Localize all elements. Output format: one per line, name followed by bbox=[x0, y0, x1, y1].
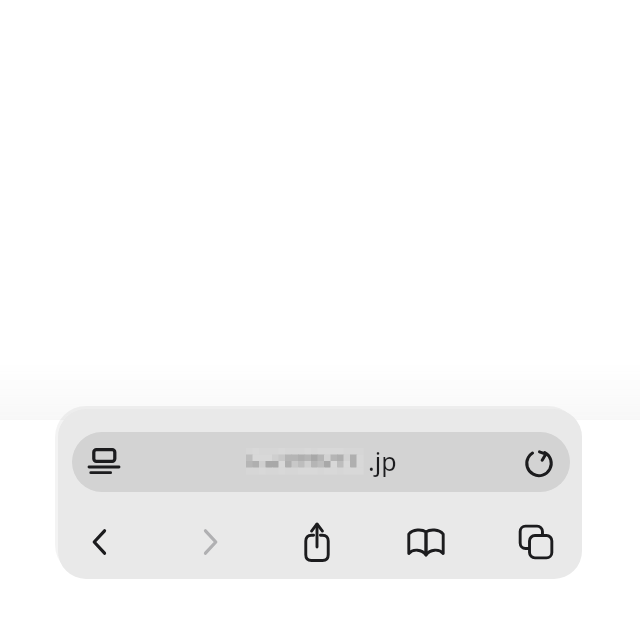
button[interactable]: Share bbox=[286, 509, 348, 575]
button[interactable]: Page settings bbox=[78, 436, 130, 488]
button[interactable]: Back bbox=[69, 509, 131, 575]
staticText: .jp bbox=[368, 444, 397, 478]
button[interactable]: .jp bbox=[72, 432, 570, 492]
button[interactable]: Reload bbox=[513, 436, 565, 488]
button[interactable]: Forward bbox=[179, 509, 241, 575]
button[interactable]: Bookmarks bbox=[395, 509, 457, 575]
button[interactable]: Tabs bbox=[505, 509, 567, 575]
